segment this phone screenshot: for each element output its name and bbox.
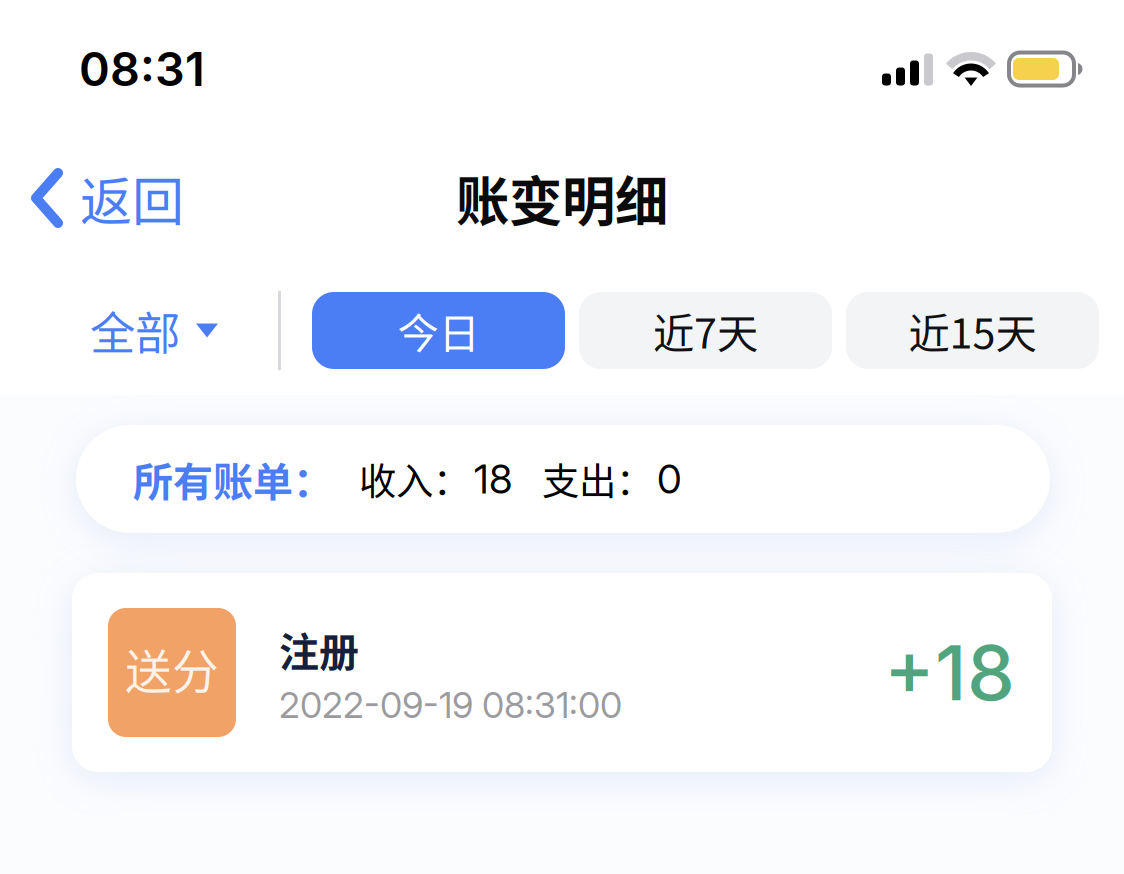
staticText: 0 — [657, 455, 682, 503]
staticText: 收入： — [359, 452, 470, 506]
staticText: 返回 — [80, 160, 184, 236]
staticText: +18 — [884, 626, 1015, 718]
staticText: 近15天 — [908, 301, 1036, 360]
staticText: 08:31 — [79, 41, 205, 97]
staticText: 注册 — [279, 620, 359, 678]
staticText: 支出： — [542, 452, 653, 506]
button[interactable]: 近7天 — [579, 292, 832, 369]
staticText: 账变明细 — [456, 159, 668, 237]
staticText: 18 — [474, 455, 512, 503]
button[interactable]: 全部 — [1, 282, 278, 378]
button[interactable]: 送分 — [72, 573, 1052, 772]
staticText: 近7天 — [653, 301, 758, 360]
button[interactable]: 近15天 — [846, 292, 1099, 369]
staticText: 今日 — [397, 301, 479, 360]
button[interactable]: 返回 — [0, 156, 190, 240]
staticText: 送分 — [125, 635, 219, 702]
staticText: 2022-09-19 08:31:00 — [279, 683, 622, 727]
staticText: 所有账单： — [133, 450, 333, 508]
button[interactable]: 今日 — [312, 292, 565, 369]
staticText: 全部 — [90, 298, 180, 363]
